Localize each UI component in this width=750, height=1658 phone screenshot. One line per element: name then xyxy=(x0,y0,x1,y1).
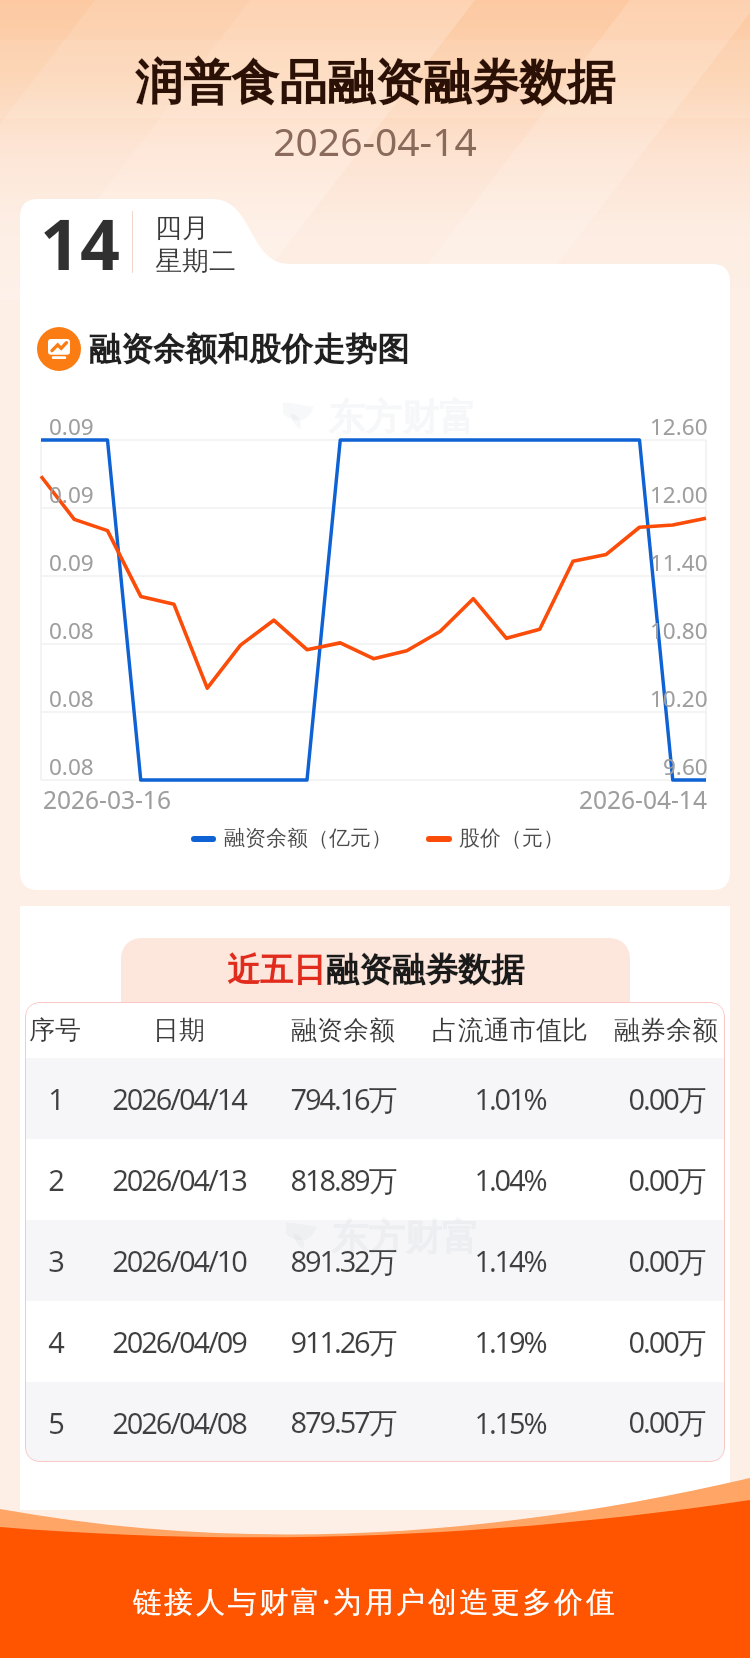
staticText: 2 xyxy=(48,1160,63,1199)
staticText: 2026/04/10 xyxy=(112,1241,246,1280)
staticText: 2026-04-14 xyxy=(0,114,750,167)
staticText: 东方财富 xyxy=(328,394,476,434)
staticText: 序号 xyxy=(29,1014,81,1047)
staticText: 2026/04/13 xyxy=(112,1160,246,1199)
staticText: 0.00万 xyxy=(628,1160,705,1200)
staticText: 9.60 xyxy=(663,751,708,782)
staticText: 东方财富 xyxy=(331,1214,479,1254)
staticText: 1.19% xyxy=(474,1322,546,1361)
staticText: 0.00万 xyxy=(628,1241,705,1281)
staticText: 0.09 xyxy=(49,479,94,510)
staticText: 融资余额和股价走势图 xyxy=(89,329,409,369)
staticText: 794.16万 xyxy=(290,1079,396,1119)
staticText: 10.20 xyxy=(650,683,708,714)
staticText: 11.40 xyxy=(650,547,708,578)
staticText: 4 xyxy=(48,1322,63,1361)
staticText: 链接人与财富·为用户创造更多价值 xyxy=(0,1581,750,1621)
staticText: 2026-04-14 xyxy=(579,783,707,816)
staticText: 润普食品融资融券数据 xyxy=(0,53,750,113)
staticText: 星期二 xyxy=(155,244,236,278)
staticText: 12.60 xyxy=(650,411,708,442)
staticText: 融券余额 xyxy=(614,1014,718,1047)
other: 走势图 xyxy=(37,327,81,371)
staticText: 0.08 xyxy=(49,751,94,782)
staticText: 0.00万 xyxy=(628,1079,705,1119)
staticText: 0.09 xyxy=(49,411,94,442)
staticText: 1.04% xyxy=(474,1160,546,1199)
staticText: 5 xyxy=(48,1403,63,1442)
staticText: 818.89万 xyxy=(290,1160,396,1200)
staticText: 891.32万 xyxy=(290,1241,396,1281)
staticText: 0.08 xyxy=(49,615,94,646)
staticText: 占流通市值比 xyxy=(432,1014,588,1047)
staticText: 0.09 xyxy=(49,547,94,578)
staticText: 1.01% xyxy=(474,1079,546,1118)
staticText: 融资余额（亿元） xyxy=(224,825,392,851)
staticText: 911.26万 xyxy=(290,1322,396,1362)
staticText: 14 xyxy=(40,195,121,290)
staticText: 1.14% xyxy=(474,1241,546,1280)
staticText: 日期 xyxy=(153,1014,205,1047)
staticText: 近五日融资融券数据 xyxy=(227,949,524,991)
staticText: 2026/04/09 xyxy=(112,1322,246,1361)
staticText: 2026/04/14 xyxy=(112,1079,246,1118)
staticText: 1.15% xyxy=(474,1403,546,1442)
staticText: 879.57万 xyxy=(290,1402,396,1442)
staticText: 2026-03-16 xyxy=(43,783,171,816)
staticText: 0.00万 xyxy=(628,1322,705,1362)
staticText: 1 xyxy=(48,1079,63,1118)
staticText: 0.00万 xyxy=(628,1402,705,1442)
staticText: 3 xyxy=(48,1241,63,1280)
staticText: 12.00 xyxy=(650,479,708,510)
staticText: 10.80 xyxy=(650,615,708,646)
staticText: 股价（元） xyxy=(459,825,564,851)
staticText: 2026/04/08 xyxy=(112,1403,246,1442)
staticText: 四月 xyxy=(155,211,209,245)
staticText: 0.08 xyxy=(49,683,94,714)
staticText: 融资余额 xyxy=(291,1014,395,1047)
